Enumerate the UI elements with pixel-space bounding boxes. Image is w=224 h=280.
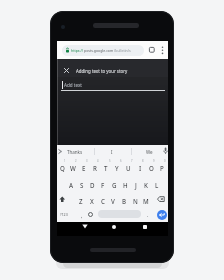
button[interactable]: I	[100, 146, 124, 157]
staticText: I	[139, 164, 142, 172]
staticText: Z	[79, 197, 83, 205]
staticText: /bulletin/s	[114, 48, 131, 53]
staticText: M	[143, 197, 149, 205]
button[interactable]: G	[102, 179, 126, 190]
button[interactable]: W	[61, 162, 85, 173]
button[interactable]: F	[91, 179, 115, 190]
button[interactable]	[163, 147, 168, 155]
staticText: P	[160, 164, 164, 172]
button[interactable]	[98, 210, 141, 218]
button[interactable]: L	[145, 179, 169, 190]
button[interactable]: N	[123, 195, 147, 206]
button[interactable]: 0	[153, 155, 177, 166]
staticText: .	[147, 211, 149, 218]
staticText: 4	[97, 159, 99, 163]
staticText: O	[149, 164, 154, 172]
button[interactable]	[161, 46, 164, 55]
button[interactable]: 7	[120, 155, 144, 166]
staticText: F	[101, 181, 105, 189]
staticText: Q	[60, 164, 65, 172]
button[interactable]: K	[134, 179, 158, 190]
staticText: J	[135, 181, 137, 189]
button[interactable]: X	[80, 195, 104, 206]
button[interactable]: B	[112, 195, 136, 206]
staticText: C	[101, 197, 105, 205]
button[interactable]: R	[83, 162, 107, 173]
button[interactable]: 9	[142, 155, 166, 166]
staticText: K	[144, 181, 148, 189]
staticText: ,	[81, 212, 83, 219]
button[interactable]: Add text	[64, 80, 124, 90]
button[interactable]	[143, 225, 147, 229]
staticText: D	[90, 181, 95, 189]
staticText: X	[90, 197, 94, 205]
staticText: S	[80, 181, 84, 189]
button[interactable]: Thanks	[63, 146, 87, 157]
button[interactable]: V	[101, 195, 125, 206]
button[interactable]: 1	[53, 155, 77, 166]
staticText: 9	[153, 159, 155, 163]
button[interactable]	[58, 149, 62, 154]
button[interactable]: I	[128, 162, 152, 173]
button[interactable]	[59, 196, 66, 203]
staticText: 3	[86, 159, 88, 163]
button[interactable]	[64, 68, 69, 73]
staticText: 5	[109, 159, 111, 163]
button[interactable]: E	[72, 162, 96, 173]
button[interactable]: 8	[131, 155, 155, 166]
staticText: N	[133, 197, 138, 205]
button[interactable]	[149, 47, 155, 53]
button[interactable]: U	[116, 162, 140, 173]
button[interactable]	[112, 225, 116, 229]
button[interactable]: A	[59, 179, 83, 190]
staticText: Thanks	[67, 149, 83, 155]
button[interactable]: H	[113, 179, 137, 190]
staticText: ?123	[60, 212, 68, 217]
button[interactable]: M	[134, 195, 158, 206]
button[interactable]: Y	[105, 162, 129, 173]
staticText: V	[111, 197, 115, 205]
staticText: W	[70, 164, 76, 172]
button[interactable]: 2	[64, 155, 88, 166]
staticText: L	[155, 181, 159, 189]
staticText: 7	[131, 159, 133, 163]
staticText: T	[104, 164, 108, 172]
button[interactable]: ,	[70, 210, 94, 221]
button[interactable]: Q	[50, 162, 74, 173]
staticText: 1	[64, 159, 66, 163]
button[interactable]	[62, 45, 144, 56]
button[interactable]: P	[150, 162, 174, 173]
button[interactable]: S	[70, 179, 94, 190]
staticText: posts.google.com	[84, 48, 114, 53]
button[interactable]	[157, 210, 167, 220]
button[interactable]	[157, 196, 165, 203]
button[interactable]	[82, 224, 88, 229]
staticText: Add text	[64, 82, 83, 88]
staticText: A	[69, 181, 74, 189]
staticText: H	[123, 181, 128, 189]
button[interactable]: Z	[69, 195, 93, 206]
staticText: B	[122, 197, 127, 205]
button[interactable]: .	[136, 209, 160, 220]
button[interactable]: 4	[86, 155, 110, 166]
button[interactable]: We	[137, 146, 161, 157]
button[interactable]: D	[80, 179, 104, 190]
button[interactable]: C	[91, 195, 115, 206]
staticText: G	[112, 181, 117, 189]
button[interactable]: O	[139, 162, 163, 173]
staticText: R	[93, 164, 97, 172]
staticText: https://	[71, 48, 84, 53]
staticText: I	[111, 149, 113, 155]
button[interactable]: T	[94, 162, 118, 173]
button[interactable]: 6	[109, 155, 133, 166]
button[interactable]: 5	[98, 155, 122, 166]
staticText: 8	[142, 159, 144, 163]
button[interactable]: ?123	[52, 209, 76, 220]
button[interactable]: J	[124, 179, 148, 190]
staticText: We	[146, 149, 153, 155]
staticText: E	[82, 164, 86, 172]
staticText: 0	[164, 159, 166, 163]
staticText: Y	[115, 164, 119, 172]
button[interactable]	[88, 212, 93, 217]
button[interactable]: 3	[75, 155, 99, 166]
